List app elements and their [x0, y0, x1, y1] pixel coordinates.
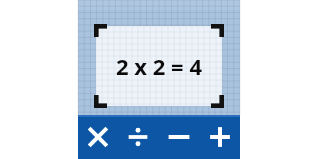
button[interactable]: Minus [158, 115, 199, 159]
button[interactable]: Divide [118, 115, 158, 159]
button[interactable]: 2 x 2 = 4 [78, 0, 240, 159]
staticText: 2 x 2 = 4 [116, 51, 202, 81]
button[interactable]: Plus [199, 115, 240, 159]
button[interactable]: Multiply [78, 115, 118, 159]
